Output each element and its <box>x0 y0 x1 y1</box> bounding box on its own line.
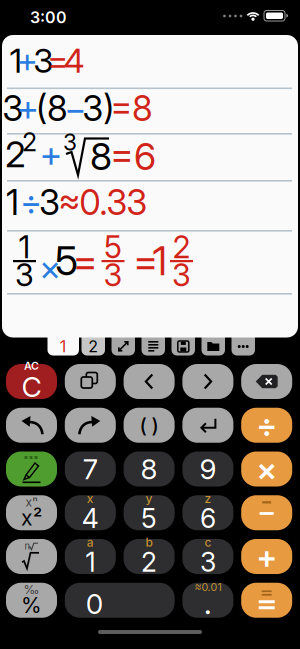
staticText: + <box>17 88 39 129</box>
staticText: a <box>87 535 94 549</box>
button[interactable]: b <box>124 539 175 574</box>
staticText: x <box>87 491 94 506</box>
staticText: n <box>24 540 30 551</box>
button[interactable]: 9 <box>182 451 233 486</box>
staticText: (8 <box>36 88 68 129</box>
staticText: x² <box>21 505 42 530</box>
button[interactable] <box>241 583 292 618</box>
staticText: 5 <box>104 229 122 265</box>
staticText: 3 <box>172 257 191 293</box>
staticText: + <box>39 133 62 175</box>
button[interactable] <box>141 330 165 355</box>
staticText: ( ) <box>140 413 159 437</box>
staticText: ≈0.01 <box>194 581 221 593</box>
staticText: 2 <box>172 229 190 265</box>
staticText: xⁿ <box>25 495 37 509</box>
staticText: 4 <box>63 41 84 80</box>
staticText: = <box>47 41 68 80</box>
button[interactable]: 2 <box>81 330 105 355</box>
button[interactable]: 1 <box>47 330 79 355</box>
button[interactable]: + <box>241 539 292 574</box>
button[interactable]: y <box>124 495 175 530</box>
staticText: 4 <box>82 503 99 534</box>
staticText: 3 <box>2 88 23 129</box>
staticText: 1 <box>18 229 30 265</box>
button[interactable] <box>65 364 116 399</box>
staticText: 2 <box>5 133 26 175</box>
staticText: AC <box>24 360 39 372</box>
staticText: =8 <box>110 88 153 129</box>
button[interactable]: n <box>6 539 57 574</box>
staticText: 8 <box>141 452 158 485</box>
button[interactable] <box>124 364 175 399</box>
staticText: × <box>256 450 277 488</box>
staticText: 1 <box>6 182 19 223</box>
staticText: 1 <box>85 546 95 578</box>
staticText: 3:00 <box>30 8 67 27</box>
staticText: b <box>146 535 153 549</box>
staticText: c <box>204 535 211 549</box>
staticText: ‰ <box>23 583 39 597</box>
staticText: 3 <box>200 546 216 578</box>
staticText: ≈0.33 <box>58 182 147 223</box>
staticText: 2 <box>141 546 157 578</box>
button[interactable] <box>231 330 255 355</box>
staticText: =6 <box>110 134 156 178</box>
button[interactable]: ‰ <box>6 583 57 618</box>
button[interactable]: a <box>65 539 116 574</box>
button[interactable]: 0 <box>65 583 175 618</box>
staticText: ÷ <box>20 182 42 223</box>
button[interactable]: 7 <box>65 451 116 486</box>
button[interactable]: x <box>65 495 116 530</box>
button[interactable] <box>201 330 225 355</box>
staticText: 3 <box>39 182 60 223</box>
button[interactable]: z <box>182 495 233 530</box>
button[interactable]: ( ) <box>124 408 175 443</box>
staticText: 3 <box>33 41 53 80</box>
button[interactable]: c <box>182 539 233 574</box>
staticText: . <box>204 591 212 620</box>
staticText: − <box>64 88 86 129</box>
staticText: 3 <box>15 257 34 293</box>
staticText: 9 <box>199 452 216 485</box>
button[interactable]: ≈0.01 <box>182 583 233 618</box>
staticText: 7 <box>83 452 98 485</box>
staticText: 2 <box>88 337 98 356</box>
staticText: 1 <box>60 337 67 356</box>
staticText: 5 <box>141 503 157 534</box>
staticText: = <box>72 237 97 284</box>
staticText: 6 <box>200 503 216 534</box>
staticText: % <box>21 593 42 618</box>
staticText: × <box>39 247 61 288</box>
button[interactable] <box>6 451 57 486</box>
button[interactable] <box>6 408 57 443</box>
button[interactable] <box>182 364 233 399</box>
button[interactable]: xⁿ <box>6 495 57 530</box>
staticText: 3) <box>82 88 114 129</box>
staticText: 1 <box>152 237 167 284</box>
button[interactable] <box>241 364 292 399</box>
staticText: 5 <box>55 237 78 284</box>
staticText: 2 <box>22 127 37 157</box>
staticText: 1 <box>9 41 22 80</box>
button[interactable]: 8 <box>124 451 175 486</box>
staticText: y <box>146 491 153 506</box>
staticText: = <box>133 237 158 284</box>
button[interactable] <box>111 330 135 355</box>
button[interactable] <box>65 408 116 443</box>
button[interactable] <box>171 330 195 355</box>
staticText: z <box>204 491 211 506</box>
staticText: 8 <box>90 134 112 178</box>
staticText: C <box>21 370 41 403</box>
staticText: 3 <box>63 129 77 156</box>
button[interactable]: × <box>241 451 292 486</box>
button[interactable]: AC <box>6 364 57 399</box>
staticText: 3 <box>103 257 122 293</box>
staticText: + <box>17 41 38 80</box>
staticText: 0 <box>86 587 103 620</box>
button[interactable] <box>241 495 292 530</box>
staticText: ÷ <box>256 406 277 444</box>
staticText: + <box>256 538 277 575</box>
button[interactable]: ÷ <box>241 408 292 443</box>
button[interactable] <box>182 408 233 443</box>
